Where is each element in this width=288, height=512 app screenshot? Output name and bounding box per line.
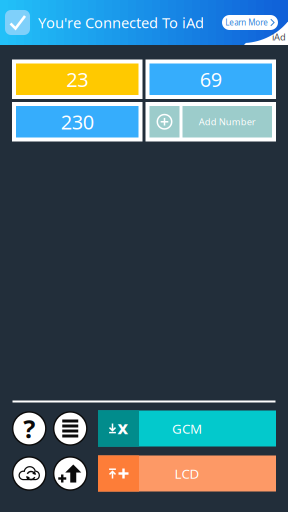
button[interactable]: Sync [12, 455, 46, 491]
staticText: Learn More [225, 17, 268, 28]
button[interactable]: GCM [98, 410, 276, 446]
staticText: 69 [200, 66, 222, 93]
button[interactable]: 230 [12, 102, 142, 141]
staticText: X [117, 419, 128, 438]
button[interactable]: Help [12, 410, 46, 446]
staticText: ? [23, 412, 35, 445]
staticText: GCM [172, 420, 202, 437]
button[interactable]: LCD [98, 455, 276, 491]
button[interactable]: Add Number [145, 102, 276, 141]
button[interactable]: Saved list [53, 410, 87, 446]
staticText: LCD [174, 465, 199, 482]
staticText: You're Connected To iAd [38, 13, 204, 32]
button[interactable]: 23 [12, 59, 142, 99]
staticText: Add Number [199, 116, 256, 128]
staticText: 23 [66, 66, 88, 93]
button[interactable]: Share [53, 455, 87, 491]
button[interactable]: 69 [145, 59, 276, 99]
staticText: iAd [272, 31, 286, 43]
button[interactable]: Learn More [222, 15, 278, 30]
staticText: 230 [61, 108, 94, 135]
